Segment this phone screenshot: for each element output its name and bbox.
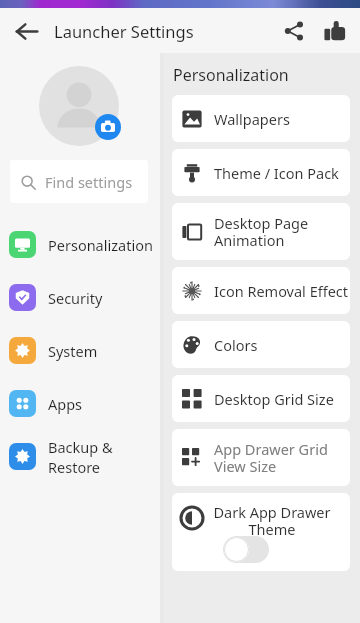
button[interactable]: Change profile photo	[95, 114, 121, 140]
button[interactable]: Personalization	[0, 218, 160, 271]
staticText: Personalization	[48, 235, 153, 255]
staticText: Desktop Grid Size	[214, 389, 334, 409]
button[interactable]: Wallpapers	[172, 95, 350, 142]
staticText: Backup & Restore	[48, 437, 160, 477]
button[interactable]: Dark App Drawer Theme toggle	[223, 536, 269, 563]
button[interactable]: Backup & Restore	[0, 430, 160, 483]
button[interactable]: Share	[275, 12, 313, 50]
staticText: Wallpapers	[214, 109, 290, 129]
button[interactable]: Apps	[0, 377, 160, 430]
button[interactable]: Theme / Icon Pack	[172, 149, 350, 196]
staticText: Desktop Page Animation	[214, 213, 309, 250]
staticText: System	[48, 341, 98, 361]
staticText: Launcher Settings	[54, 20, 194, 42]
button[interactable]: Find settings	[10, 160, 148, 203]
staticText: Security	[48, 288, 103, 308]
staticText: Find settings	[45, 172, 133, 192]
staticText: Apps	[48, 394, 83, 414]
staticText: Colors	[214, 335, 258, 355]
button[interactable]: Icon Removal Effect	[172, 267, 350, 314]
staticText: Personalization	[173, 64, 289, 86]
button[interactable]: App Drawer Grid View Size	[172, 429, 350, 486]
button[interactable]: Back	[7, 12, 45, 50]
staticText: App Drawer Grid View Size	[214, 439, 328, 476]
button[interactable]: Dark App Drawer Theme	[172, 493, 350, 571]
button[interactable]: System	[0, 324, 160, 377]
button[interactable]: Desktop Page Animation	[172, 203, 350, 260]
staticText: Theme / Icon Pack	[214, 163, 339, 183]
staticText: Dark App Drawer Theme	[213, 502, 331, 539]
button[interactable]: Rate app	[316, 12, 354, 50]
staticText: Icon Removal Effect	[214, 281, 349, 301]
button[interactable]: Desktop Grid Size	[172, 375, 350, 422]
button[interactable]: Colors	[172, 321, 350, 368]
button[interactable]: Security	[0, 271, 160, 324]
